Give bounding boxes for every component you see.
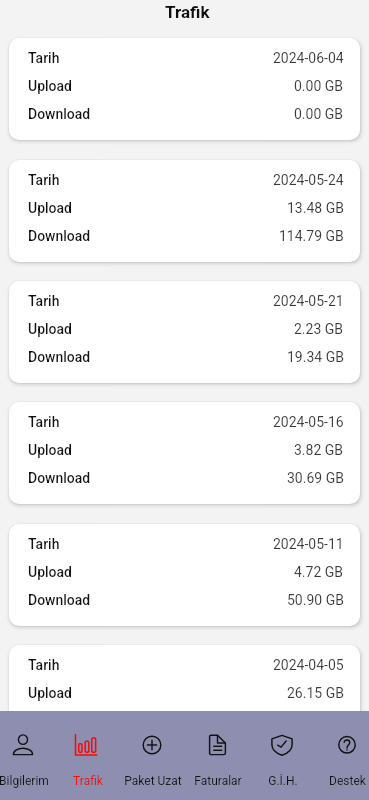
staticText: Upload [28,200,72,216]
staticText: Download [28,228,91,244]
staticText: Tarih [28,657,60,673]
staticText: Download [28,592,91,608]
staticText: Tarih [28,536,60,552]
staticText: Download [28,470,91,486]
button[interactable]: Destek [311,733,369,788]
staticText: Tarih [28,172,60,188]
staticText: 2.23 GB [294,321,344,337]
staticText: Upload [28,78,72,94]
staticText: Trafik [165,2,210,22]
staticText: 114.79 GB [279,228,344,244]
button[interactable]: Tarih [9,160,360,262]
staticText: 30.69 GB [287,470,344,486]
staticText: Upload [28,685,72,701]
button[interactable]: Tarih [9,402,360,504]
staticText: 4.72 GB [294,564,344,580]
staticText: Paket Uzat [124,774,182,788]
staticText: Trafik [73,774,103,788]
button[interactable]: Tarih [9,524,360,626]
staticText: 2024-04-05 [273,657,344,673]
staticText: 13.48 GB [287,200,344,216]
staticText: 0.00 GB [294,78,344,94]
button[interactable]: Faturalar [182,733,254,788]
button[interactable]: Tarih [9,645,360,747]
staticText: Upload [28,564,72,580]
staticText: 2024-05-16 [273,414,344,430]
button[interactable]: G.İ.H. [247,733,319,788]
staticText: Bilgilerim [0,774,49,788]
staticText: 19.34 GB [287,349,344,365]
staticText: 2024-05-21 [273,293,344,309]
staticText: 2024-05-24 [273,172,344,188]
staticText: Tarih [28,293,60,309]
staticText: 50.90 GB [287,592,344,608]
staticText: Tarih [28,414,60,430]
staticText: G.İ.H. [268,774,298,788]
staticText: Upload [28,442,72,458]
staticText: Download [28,106,91,122]
button[interactable]: Bilgilerim [0,733,60,788]
button[interactable]: Trafik [52,733,124,788]
button[interactable]: Paket Uzat [117,733,189,788]
button[interactable]: Tarih [9,38,360,140]
staticText: Faturalar [194,774,242,788]
staticText: Upload [28,321,72,337]
staticText: 2024-06-04 [273,50,344,66]
button[interactable]: Tarih [9,281,360,383]
staticText: 0.00 GB [294,106,344,122]
staticText: 2024-05-11 [273,536,344,552]
staticText: Download [28,349,91,365]
staticText: Tarih [28,50,60,66]
staticText: 3.82 GB [294,442,344,458]
staticText: 26.15 GB [287,685,344,701]
staticText: Destek [329,774,366,788]
